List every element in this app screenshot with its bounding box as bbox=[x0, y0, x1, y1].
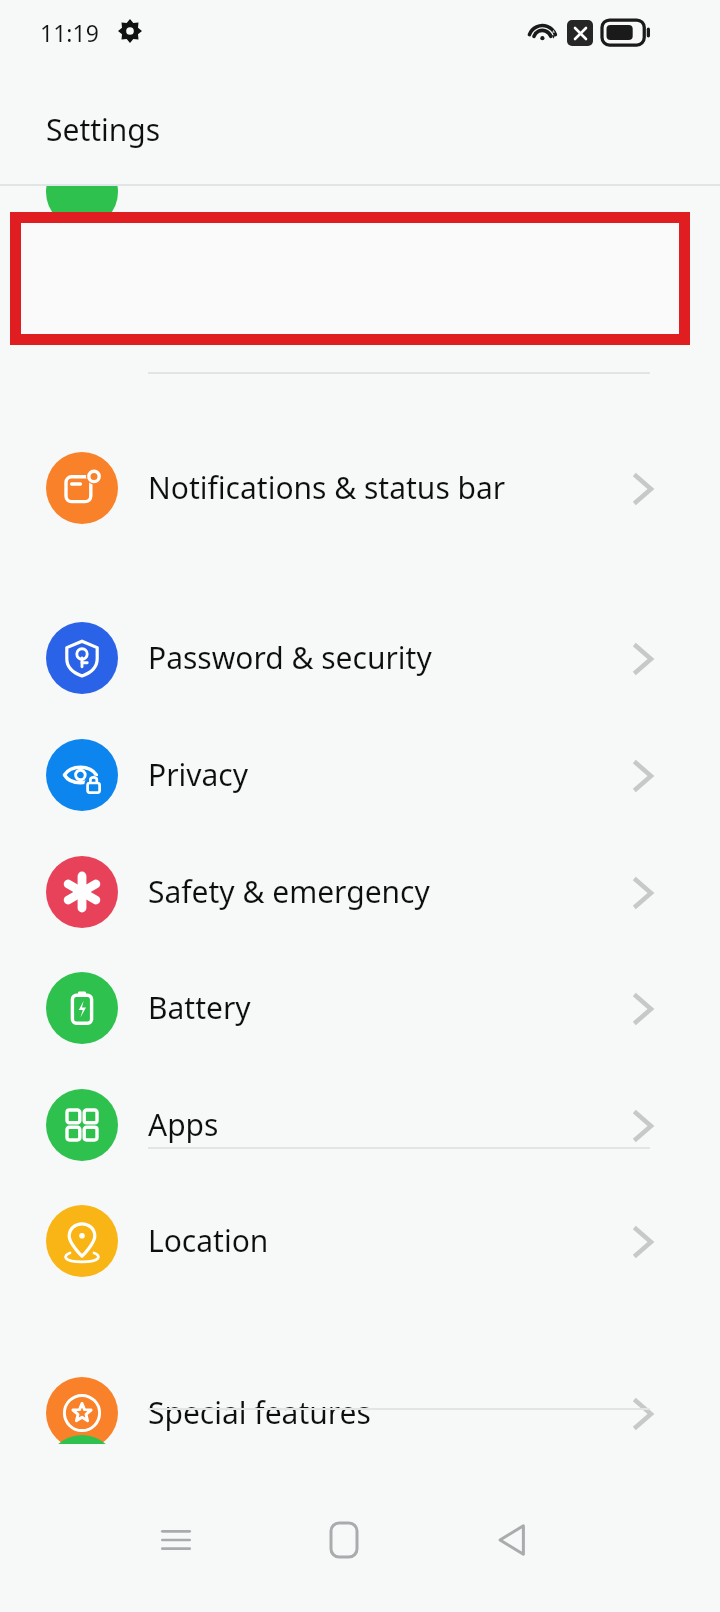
staticText: Privacy bbox=[148, 754, 618, 795]
button[interactable]: Safety & emergency bbox=[0, 834, 720, 950]
button[interactable]: Battery bbox=[0, 950, 720, 1066]
button[interactable]: Password & security bbox=[0, 600, 720, 716]
button[interactable]: Special features bbox=[0, 1355, 720, 1444]
staticText: Safety & emergency bbox=[148, 871, 618, 912]
staticText: Battery bbox=[148, 987, 618, 1028]
button[interactable]: Home bbox=[298, 1500, 390, 1580]
staticText: 11:19 bbox=[40, 17, 99, 48]
button[interactable]: Notifications & status bar bbox=[0, 430, 720, 546]
staticText: Notifications & status bar bbox=[148, 467, 618, 508]
button[interactable]: Privacy bbox=[0, 717, 720, 833]
staticText: Location bbox=[148, 1220, 618, 1261]
staticText: Apps bbox=[148, 1104, 618, 1145]
button[interactable]: Apps bbox=[0, 1067, 720, 1183]
staticText: Special features bbox=[148, 1392, 618, 1433]
button[interactable]: Location bbox=[0, 1183, 720, 1299]
button[interactable]: Back bbox=[466, 1500, 558, 1580]
button[interactable]: Recent apps bbox=[130, 1500, 222, 1580]
staticText: Settings bbox=[46, 109, 161, 150]
staticText: Password & security bbox=[148, 637, 618, 678]
